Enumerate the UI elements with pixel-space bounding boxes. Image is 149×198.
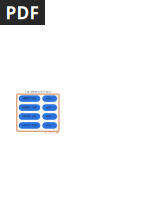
button[interactable]: Layer 3: [42, 113, 57, 120]
button[interactable]: Layer 7: [42, 95, 57, 102]
staticText: Layer 1: [46, 124, 53, 127]
staticText: Application Layer: [22, 97, 36, 100]
staticText: Network Access: [21, 124, 37, 127]
staticText: Internet Layer: [22, 115, 36, 118]
staticText: Layer 7: [46, 97, 53, 100]
button[interactable]: Internet Layer: [19, 113, 40, 120]
button[interactable]: Network Access: [19, 122, 40, 129]
staticText: The Layered TCP/IP Suite: [25, 91, 51, 93]
button[interactable]: Transport Layer: [19, 104, 40, 111]
button[interactable]: Layer 1: [42, 122, 57, 129]
button[interactable]: PDF: [0, 0, 45, 25]
staticText: Layer 3: [46, 115, 53, 118]
staticText: PDF: [5, 1, 39, 24]
staticText: Transport Layer: [22, 106, 37, 109]
button[interactable]: Layer 4: [42, 104, 57, 111]
staticText: Layer 4: [46, 106, 53, 109]
staticText: The TCP/IP Guide: [44, 131, 59, 134]
button[interactable]: Application Layer: [19, 95, 40, 102]
